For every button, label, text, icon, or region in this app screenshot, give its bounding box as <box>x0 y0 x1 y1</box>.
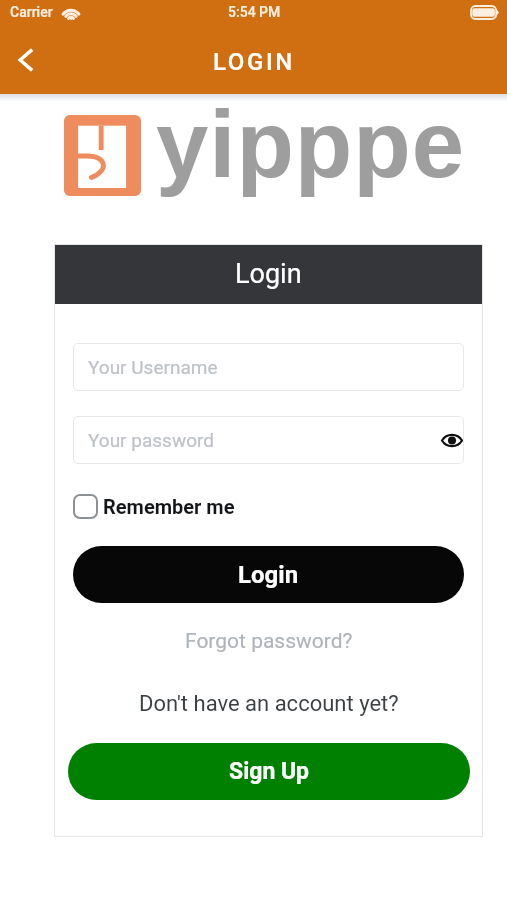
staticText: Your password <box>88 429 214 451</box>
button[interactable]: Remember me <box>73 492 235 521</box>
staticText: Login <box>235 258 302 290</box>
staticText: Remember me <box>103 495 235 518</box>
staticText: Login <box>238 561 299 589</box>
button[interactable]: Show password <box>435 423 469 457</box>
button[interactable]: Your password <box>73 416 464 464</box>
button[interactable]: Sign Up <box>68 743 470 800</box>
staticText: 5:54 PM <box>228 4 281 20</box>
button[interactable]: Login <box>73 546 464 603</box>
button[interactable]: Back <box>6 38 50 82</box>
staticText: yipppe <box>156 92 465 197</box>
staticText: LOGIN <box>213 48 295 76</box>
staticText: Don't have an account yet? <box>139 691 399 717</box>
button[interactable]: Your Username <box>73 343 464 391</box>
staticText: Sign Up <box>229 758 310 785</box>
staticText: Your Username <box>88 356 218 378</box>
staticText: Carrier <box>10 4 53 20</box>
button[interactable]: Forgot password? <box>185 629 353 654</box>
